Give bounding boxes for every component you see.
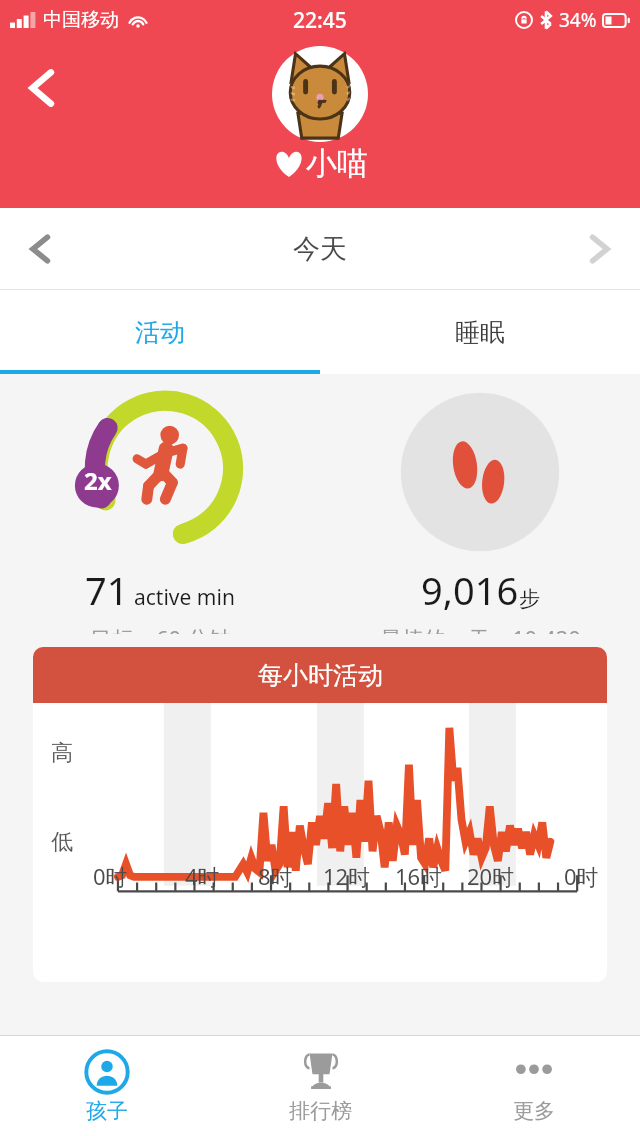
staticText: 0时 <box>564 861 599 891</box>
staticText: 71 <box>85 564 129 616</box>
staticText: 最棒的一天：10,420 <box>380 623 581 634</box>
staticText: 孩子 <box>86 1098 128 1124</box>
button[interactable]: Next day <box>572 222 626 276</box>
staticText: 排行榜 <box>289 1098 352 1124</box>
button[interactable]: 活动 <box>0 290 320 374</box>
staticText: 2x <box>84 464 112 497</box>
staticText: 更多 <box>513 1098 555 1124</box>
staticText: 活动 <box>135 317 185 348</box>
staticText: 22:45 <box>293 6 347 35</box>
staticText: 0时 <box>93 861 128 891</box>
staticText: active min <box>134 583 235 612</box>
staticText: 8时 <box>258 861 293 891</box>
button[interactable]: 2x <box>0 384 320 634</box>
staticText: 4时 <box>185 861 220 891</box>
staticText: 20时 <box>467 861 515 891</box>
button[interactable]: 9,016 <box>320 384 640 634</box>
staticText: 12时 <box>323 861 371 891</box>
staticText: 目标：60 分钟 <box>90 623 231 634</box>
staticText: 高 <box>51 739 73 767</box>
staticText: 小喵 <box>306 144 368 183</box>
button[interactable]: Previous day <box>14 222 68 276</box>
staticText: 34% <box>559 7 597 33</box>
staticText: 今天 <box>293 232 347 266</box>
staticText: 低 <box>51 828 73 856</box>
button[interactable]: 更多 <box>427 1036 640 1136</box>
button[interactable]: 孩子 <box>0 1036 214 1136</box>
staticText: 中国移动 <box>43 8 119 32</box>
button[interactable]: Back <box>14 60 70 116</box>
staticText: 9,016 <box>421 564 519 616</box>
staticText: 16时 <box>395 861 443 891</box>
button[interactable]: 每小时活动 <box>33 647 607 982</box>
staticText: 每小时活动 <box>258 660 383 691</box>
button[interactable]: 排行榜 <box>214 1036 427 1136</box>
button[interactable]: 睡眠 <box>320 290 640 374</box>
staticText: 睡眠 <box>455 317 505 348</box>
staticText: 步 <box>519 586 540 612</box>
